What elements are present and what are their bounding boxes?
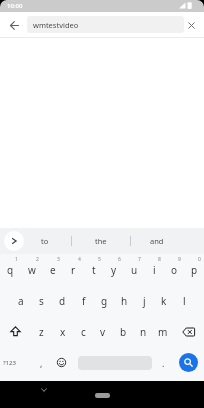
- button[interactable]: [179, 353, 198, 372]
- staticText: .: [162, 357, 165, 369]
- button[interactable]: wmtestvideo: [27, 16, 184, 33]
- staticText: i: [153, 263, 156, 277]
- staticText: to: [41, 236, 49, 246]
- button[interactable]: n: [133, 316, 153, 347]
- button[interactable]: b: [113, 316, 133, 347]
- button[interactable]: j: [134, 285, 154, 316]
- button[interactable]: [4, 231, 24, 251]
- staticText: y: [111, 263, 117, 277]
- staticText: 10:00: [7, 2, 23, 10]
- button[interactable]: [71, 347, 153, 378]
- staticText: x: [60, 325, 66, 339]
- staticText: ,: [40, 357, 43, 369]
- button[interactable]: [51, 347, 71, 378]
- button[interactable]: and: [132, 228, 182, 254]
- staticText: h: [121, 294, 128, 308]
- staticText: 1: [15, 256, 18, 263]
- staticText: 8: [158, 256, 161, 263]
- button[interactable]: e: [42, 254, 63, 285]
- button[interactable]: k: [154, 285, 174, 316]
- staticText: z: [39, 325, 44, 339]
- button[interactable]: w: [21, 254, 42, 285]
- button[interactable]: u: [124, 254, 144, 285]
- button[interactable]: f: [73, 285, 94, 316]
- staticText: f: [82, 294, 86, 308]
- button[interactable]: c: [73, 316, 93, 347]
- button[interactable]: y: [104, 254, 124, 285]
- staticText: c: [81, 325, 86, 339]
- staticText: wmtestvideo: [33, 20, 79, 30]
- staticText: and: [150, 236, 164, 246]
- staticText: 9: [178, 256, 181, 263]
- button[interactable]: g: [94, 285, 114, 316]
- button[interactable]: s: [31, 285, 52, 316]
- staticText: q: [7, 263, 14, 277]
- staticText: the: [95, 236, 107, 246]
- staticText: b: [120, 325, 127, 339]
- staticText: 4: [78, 256, 81, 263]
- button[interactable]: q: [0, 254, 21, 285]
- button[interactable]: r: [63, 254, 84, 285]
- staticText: v: [100, 325, 106, 339]
- button[interactable]: x: [52, 316, 73, 347]
- button[interactable]: d: [52, 285, 73, 316]
- button[interactable]: the: [73, 228, 129, 254]
- staticText: g: [101, 294, 108, 308]
- staticText: 7: [138, 256, 141, 263]
- staticText: 5: [98, 256, 101, 263]
- button[interactable]: o: [164, 254, 184, 285]
- button[interactable]: i: [144, 254, 164, 285]
- staticText: 3: [57, 256, 60, 263]
- button[interactable]: t: [84, 254, 104, 285]
- button[interactable]: ?123: [0, 347, 31, 378]
- staticText: p: [191, 263, 198, 277]
- staticText: e: [50, 263, 56, 277]
- staticText: w: [28, 263, 36, 277]
- button[interactable]: ,: [31, 347, 51, 378]
- button[interactable]: [173, 347, 204, 378]
- staticText: a: [18, 294, 24, 308]
- staticText: k: [161, 294, 167, 308]
- button[interactable]: [184, 18, 198, 32]
- staticText: t: [92, 263, 96, 277]
- staticText: s: [39, 294, 44, 308]
- button[interactable]: m: [153, 316, 173, 347]
- button[interactable]: h: [114, 285, 134, 316]
- staticText: o: [171, 263, 178, 277]
- staticText: 2: [36, 256, 39, 263]
- button[interactable]: a: [10, 285, 31, 316]
- staticText: ?123: [3, 359, 16, 367]
- button[interactable]: l: [174, 285, 194, 316]
- button[interactable]: to: [28, 228, 62, 254]
- staticText: 6: [118, 256, 121, 263]
- button[interactable]: z: [31, 316, 52, 347]
- button[interactable]: [173, 316, 204, 347]
- button[interactable]: [7, 18, 21, 32]
- button[interactable]: v: [93, 316, 113, 347]
- button[interactable]: p: [184, 254, 204, 285]
- button[interactable]: [38, 384, 50, 396]
- staticText: 0: [198, 256, 201, 263]
- staticText: j: [143, 294, 146, 308]
- staticText: u: [131, 263, 138, 277]
- button[interactable]: .: [153, 347, 173, 378]
- staticText: m: [158, 325, 168, 339]
- button[interactable]: [0, 316, 31, 347]
- staticText: l: [183, 294, 186, 308]
- staticText: d: [59, 294, 66, 308]
- staticText: r: [71, 263, 76, 277]
- button[interactable]: [95, 393, 110, 398]
- staticText: n: [140, 325, 147, 339]
